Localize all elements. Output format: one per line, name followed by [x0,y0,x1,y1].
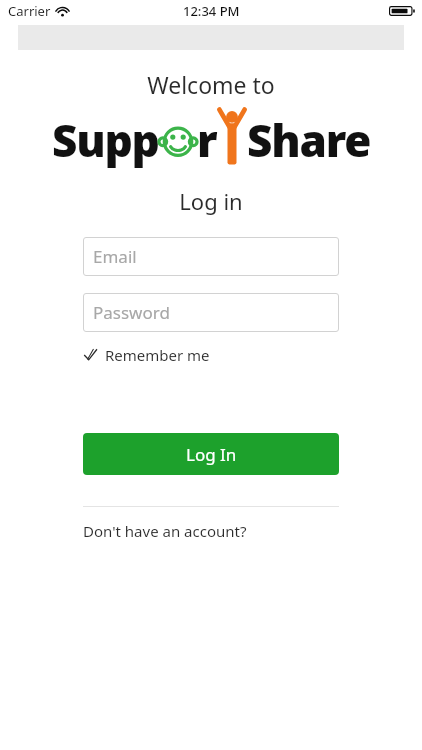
other: Remember me checked [83,347,98,363]
staticText: Share [247,110,371,170]
staticText: Remember me [105,345,210,365]
staticText: Log In [186,443,237,466]
button[interactable]: Password [83,293,339,332]
staticText: Supp [52,110,159,170]
button[interactable]: Log In [83,433,339,475]
staticText: Welcome to [0,69,422,100]
staticText: Carrier [8,2,51,20]
staticText: r [197,110,217,170]
staticText: Password [93,301,170,324]
staticText: Email [93,245,137,268]
button[interactable]: Remember me checked [83,345,210,365]
staticText: Don't have an account? [83,521,247,541]
button[interactable]: Email [83,237,339,276]
button[interactable]: Don't have an account? [83,521,247,541]
staticText: 12:34 PM [183,2,240,20]
staticText: Log in [0,186,422,216]
